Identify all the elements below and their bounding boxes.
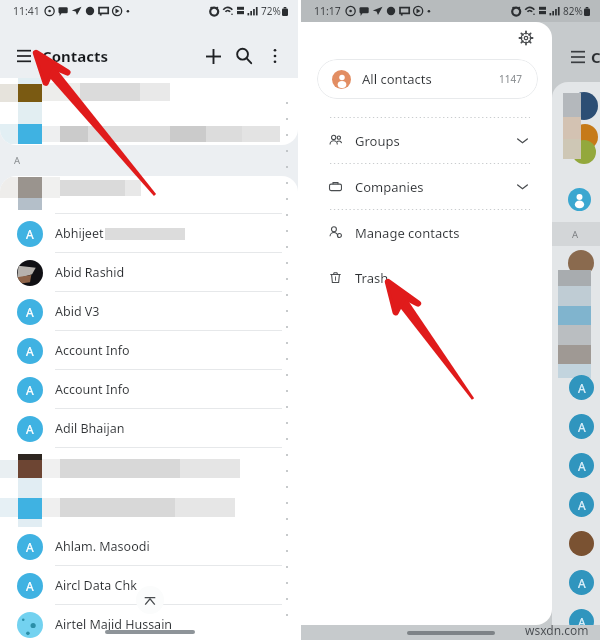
staticText: Adil Bhaijan xyxy=(55,420,125,437)
button[interactable]: Manage contacts xyxy=(301,210,552,255)
staticText: A xyxy=(26,578,34,594)
staticText: A xyxy=(14,154,21,167)
staticText: Contacts xyxy=(42,46,109,66)
staticText: 82% xyxy=(563,4,583,18)
staticText: A xyxy=(578,614,586,625)
button[interactable]: A xyxy=(0,409,298,448)
staticText: A xyxy=(26,343,34,359)
staticText: 11:41 xyxy=(13,4,40,18)
button[interactable]: Search xyxy=(229,41,259,71)
staticText: A xyxy=(26,382,34,398)
staticText: Account Info xyxy=(55,342,130,359)
staticText: Account Info xyxy=(55,381,130,398)
button[interactable]: Abid Rashid xyxy=(0,253,298,292)
button[interactable]: A xyxy=(0,214,298,253)
staticText: C xyxy=(591,47,600,67)
staticText: A xyxy=(578,419,586,435)
staticText: Aircl Data Chk xyxy=(55,577,137,594)
staticText: 72% xyxy=(261,4,281,18)
button[interactable]: Trash xyxy=(301,255,552,300)
staticText: A xyxy=(26,304,34,320)
staticText: A xyxy=(578,575,586,591)
staticText: A xyxy=(578,458,586,474)
staticText: A xyxy=(26,539,34,555)
staticText: Abid Rashid xyxy=(55,264,125,281)
staticText: Abid V3 xyxy=(55,303,100,320)
button[interactable]: Scroll to top xyxy=(136,586,164,614)
staticText: All contacts xyxy=(362,70,432,88)
staticText: A xyxy=(26,226,34,242)
staticText: Airtel Majid Hussain xyxy=(55,616,173,633)
button[interactable]: A xyxy=(0,527,298,566)
staticText: Companies xyxy=(355,178,424,196)
button[interactable]: All contacts xyxy=(317,59,538,99)
button[interactable]: A xyxy=(0,292,298,331)
staticText: 11:17 xyxy=(314,4,341,18)
staticText: Manage contacts xyxy=(355,224,460,242)
staticText: Groups xyxy=(355,132,400,150)
staticText: A xyxy=(26,421,34,437)
button[interactable]: A xyxy=(0,331,298,370)
staticText: Trash xyxy=(355,269,389,287)
staticText: A xyxy=(572,228,579,241)
button[interactable]: A xyxy=(0,370,298,409)
button[interactable]: Settings xyxy=(513,25,539,51)
button[interactable]: Airtel Majid Hussain xyxy=(0,605,298,640)
staticText: Abhijeet xyxy=(55,225,104,242)
staticText: wsxdn.com xyxy=(525,622,589,638)
button[interactable]: Companies xyxy=(301,164,552,209)
staticText: A xyxy=(578,380,586,396)
staticText: 1147 xyxy=(499,72,522,86)
button[interactable]: Groups xyxy=(301,118,552,163)
button[interactable]: A xyxy=(0,566,298,605)
button[interactable]: Add contact xyxy=(198,41,228,71)
button[interactable]: Open navigation drawer xyxy=(12,44,36,68)
button[interactable]: More options xyxy=(260,41,290,71)
staticText: A xyxy=(578,497,586,513)
staticText: Ahlam. Masoodi xyxy=(55,538,150,555)
